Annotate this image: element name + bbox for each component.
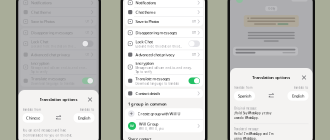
staticText: Chat theme: [31, 9, 51, 15]
staticText: You can send messages and have: [22, 129, 66, 132]
staticText: Translate from: [22, 108, 40, 111]
button[interactable]: Create group with Will U: [20, 108, 96, 119]
staticText: Encryption: [31, 60, 49, 66]
staticText: Tap to verify: [31, 70, 47, 74]
staticText: them translated for you on this chat.: [22, 134, 72, 137]
staticText: Download language to translate: [135, 82, 179, 85]
button[interactable]: Notifications: [125, 0, 203, 7]
staticText: Translate messages: [135, 76, 170, 81]
staticText: Translation options: [39, 97, 77, 102]
button[interactable]: Encryption: [125, 59, 203, 74]
staticText: Disappearing messages: [31, 30, 73, 35]
staticText: Advanced chat privacy: [135, 52, 174, 57]
staticText: Create group with Will U: [33, 111, 76, 116]
staticText: Download language to translate: [31, 82, 75, 85]
staticText: Will Group: [139, 121, 158, 127]
button[interactable]: Spanish: [234, 91, 255, 101]
button[interactable]: Advanced chat privacy: [20, 50, 96, 59]
button[interactable]: Notifications: [20, 0, 96, 7]
staticText: Chat theme: [135, 9, 155, 15]
button[interactable]: Translate messages: [125, 75, 203, 87]
staticText: Off: [192, 31, 196, 34]
button[interactable]: Chinese: [22, 113, 43, 123]
staticText: Original message: [234, 107, 257, 110]
button[interactable]: Save to Photos: [20, 17, 96, 26]
staticText: Off: [85, 31, 89, 34]
button[interactable]: Contact details: [20, 89, 96, 98]
staticText: Save to Photos: [135, 19, 159, 24]
button[interactable]: Swap languages: [267, 89, 275, 98]
staticText: using WhatsApp.: [234, 137, 257, 140]
staticText: Off: [85, 20, 89, 23]
button[interactable]: Share contact: [123, 132, 205, 140]
button[interactable]: Swap languages: [54, 111, 62, 120]
staticText: Off: [85, 53, 89, 56]
staticText: Share contact: [23, 136, 46, 140]
staticText: English: [292, 93, 304, 98]
staticText: Translate messages: [31, 76, 66, 81]
staticText: Tap to verify: [135, 70, 151, 74]
staticText: Notifications: [31, 0, 52, 5]
staticText: Save to Photos: [31, 19, 55, 24]
button[interactable]: Close: [299, 73, 308, 82]
staticText: Contact details: [135, 91, 160, 96]
button[interactable]: Lock Chat: [20, 38, 96, 50]
staticText: Advanced chat privacy: [31, 52, 70, 57]
button[interactable]: W: [20, 119, 96, 132]
button[interactable]: Chat theme: [20, 8, 96, 17]
staticText: Create group with Will U: [137, 111, 180, 116]
staticText: Off: [192, 53, 196, 56]
staticText: Messages and calls are end-to-end encryp…: [135, 66, 194, 70]
staticText: Translated message: [234, 128, 259, 131]
staticText: Will U, Will U, you: [34, 127, 59, 130]
staticText: W: [130, 123, 134, 129]
staticText: Translate to: [293, 86, 308, 89]
staticText: 1 group in common: [128, 101, 167, 107]
button[interactable]: Translate messages: [20, 75, 96, 87]
button[interactable]: Chat theme: [125, 8, 203, 17]
staticText: Share contact: [128, 136, 151, 140]
staticText: ¡Hola! Soy WhatsApp y estoy: [234, 111, 271, 115]
button[interactable]: Disappearing messages: [20, 28, 96, 37]
staticText: English: [78, 115, 90, 120]
button[interactable]: Close: [85, 95, 94, 104]
staticText: Spanish: [238, 93, 251, 98]
staticText: Will U, Will U, you: [139, 127, 164, 130]
button[interactable]: English: [73, 113, 94, 123]
button[interactable]: Advanced chat privacy: [125, 50, 203, 59]
button[interactable]: Share contact: [18, 132, 98, 140]
button[interactable]: Save to Photos: [125, 17, 203, 26]
staticText: Encryption: [135, 60, 153, 66]
staticText: Chinese: [26, 115, 40, 120]
staticText: Lock Chat: [31, 39, 48, 44]
staticText: Notifications: [135, 0, 156, 5]
staticText: Lock Chat: [135, 39, 152, 44]
button[interactable]: Encryption: [20, 59, 96, 74]
staticText: Not everyone in the chat can read: [22, 139, 68, 140]
staticText: Lock and hide this chat on this device: [135, 45, 182, 48]
staticText: Messages and calls are end-to-end encryp…: [31, 66, 87, 70]
staticText: Disappearing messages: [135, 30, 177, 35]
staticText: Will Group: [34, 121, 53, 127]
staticText: Translate to: [79, 108, 94, 111]
staticText: Today: [268, 7, 275, 10]
button[interactable]: W: [125, 119, 203, 132]
staticText: usando WhatsApp.: [234, 116, 259, 120]
button[interactable]: English: [287, 91, 308, 101]
staticText: Hello! I'm WhatsApp and I'm: [234, 132, 273, 136]
staticText: Translate from: [234, 86, 252, 89]
staticText: Off: [192, 20, 196, 23]
staticText: Translation options: [252, 75, 290, 80]
button[interactable]: Contact details: [125, 89, 203, 98]
button[interactable]: Create group with Will U: [125, 108, 203, 119]
button[interactable]: Disappearing messages: [125, 28, 203, 37]
button[interactable]: Lock Chat: [125, 38, 203, 50]
